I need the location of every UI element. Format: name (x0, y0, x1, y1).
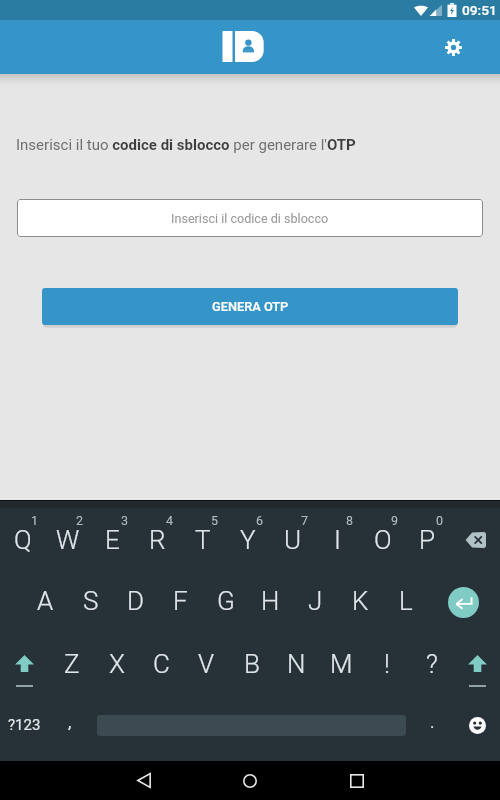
button[interactable]: N (274, 635, 319, 693)
button[interactable]: Shift (2, 632, 47, 690)
staticText: D (127, 586, 145, 616)
staticText: O (374, 525, 392, 555)
staticText: P (419, 525, 436, 555)
button[interactable]: , (51, 694, 89, 750)
staticText: X (109, 649, 125, 679)
staticText: Inserisci il tuo codice di sblocco per g… (16, 136, 356, 154)
button[interactable]: S (68, 572, 113, 630)
staticText: K (352, 586, 369, 616)
button[interactable]: Home (223, 761, 277, 800)
button[interactable]: Enter (438, 573, 488, 631)
staticText: G (217, 586, 235, 616)
button[interactable]: V (184, 635, 229, 693)
button[interactable]: Backspace (450, 511, 500, 569)
button[interactable]: Inserisci il codice di sblocco (17, 199, 483, 237)
button[interactable]: Z (49, 635, 94, 693)
staticText: 09:51 (462, 2, 497, 18)
button[interactable]: Settings (437, 31, 469, 63)
staticText: V (198, 649, 215, 679)
staticText: Y (240, 525, 256, 555)
button[interactable]: H (248, 572, 293, 630)
button[interactable]: Shift (455, 632, 500, 690)
staticText: 3 (121, 513, 129, 528)
button[interactable]: Recents (330, 761, 384, 800)
staticText: ! (384, 649, 390, 679)
staticText: Inserisci il codice di sblocco (171, 211, 329, 226)
button[interactable]: ! (364, 635, 409, 693)
staticText: U (284, 525, 302, 555)
staticText: E (105, 525, 120, 555)
staticText: I (334, 525, 341, 555)
button[interactable]: Y (225, 511, 270, 569)
staticText: A (37, 586, 54, 616)
button[interactable]: . (413, 694, 451, 750)
button[interactable]: A (23, 572, 68, 630)
staticText: R (149, 525, 166, 555)
staticText: , (68, 712, 72, 732)
staticText: 5 (211, 513, 219, 528)
button[interactable]: O (360, 511, 405, 569)
staticText: Z (64, 649, 80, 679)
button[interactable]: Emoji (455, 697, 500, 753)
button[interactable]: G (203, 572, 248, 630)
button[interactable]: W (45, 511, 90, 569)
button[interactable]: GENERA OTP (42, 288, 458, 325)
button[interactable]: L (383, 572, 428, 630)
button[interactable]: R (135, 511, 180, 569)
staticText: 8 (346, 513, 354, 528)
staticText: 0 (436, 513, 444, 528)
button[interactable]: I (315, 511, 360, 569)
staticText: Q (14, 525, 32, 555)
staticText: 9 (391, 513, 399, 528)
staticText: ?123 (8, 716, 41, 734)
button[interactable]: Q (0, 511, 45, 569)
staticText: GENERA OTP (212, 299, 289, 314)
staticText: F (173, 586, 188, 616)
button[interactable]: K (338, 572, 383, 630)
staticText: S (83, 586, 99, 616)
button[interactable]: M (319, 635, 364, 693)
staticText: 4 (166, 513, 174, 528)
button[interactable]: E (90, 511, 135, 569)
staticText: . (430, 712, 435, 732)
staticText: 6 (256, 513, 264, 528)
button[interactable]: Back (117, 761, 171, 800)
staticText: L (399, 586, 413, 616)
staticText: J (308, 586, 323, 616)
staticText: 7 (301, 513, 309, 528)
button[interactable]: ?123 (0, 697, 52, 753)
staticText: 1 (31, 513, 39, 528)
button[interactable]: D (113, 572, 158, 630)
staticText: W (56, 525, 80, 555)
button[interactable]: X (94, 635, 139, 693)
staticText: T (195, 525, 211, 555)
staticText: ? (426, 649, 438, 679)
staticText: H (261, 586, 280, 616)
button[interactable]: B (229, 635, 274, 693)
button[interactable]: ? (409, 635, 454, 693)
staticText: C (153, 649, 170, 679)
staticText: 2 (76, 513, 84, 528)
staticText: N (287, 649, 306, 679)
staticText: B (244, 649, 260, 679)
button[interactable]: C (139, 635, 184, 693)
button[interactable]: P (405, 511, 450, 569)
button[interactable]: U (270, 511, 315, 569)
button[interactable]: J (293, 572, 338, 630)
button[interactable]: F (158, 572, 203, 630)
button[interactable]: T (180, 511, 225, 569)
staticText: M (330, 649, 353, 679)
